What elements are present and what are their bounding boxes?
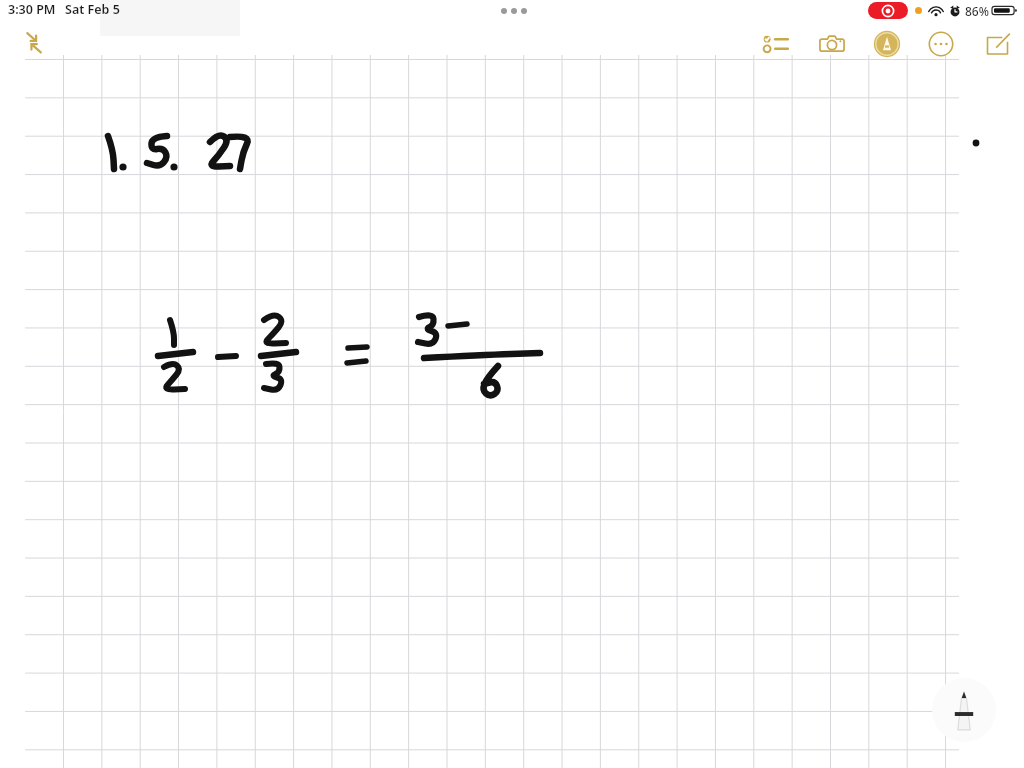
button[interactable]: Exit full screen: [17, 26, 49, 58]
button[interactable]: New note: [977, 24, 1017, 64]
button[interactable]: More options: [921, 24, 961, 64]
button[interactable]: Insert photo: [812, 24, 852, 64]
staticText: 86%: [965, 3, 989, 19]
button[interactable]: Checklist: [756, 24, 798, 64]
button[interactable]: Drawing tools: [932, 678, 996, 742]
staticText: Sat Feb 5: [65, 1, 120, 18]
button[interactable]: Markup: [867, 24, 907, 64]
button[interactable]: Screen recording: [868, 2, 908, 19]
staticText: 3:30 PM: [8, 1, 56, 18]
